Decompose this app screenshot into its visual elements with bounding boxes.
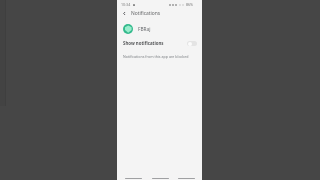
button[interactable]: FBRaj [117, 22, 202, 36]
button[interactable]: Back [122, 169, 144, 180]
staticText: Notifications [131, 10, 161, 17]
staticText: FBRaj [138, 26, 151, 33]
staticText: 10:34 [121, 2, 131, 7]
button[interactable]: Home [149, 169, 171, 180]
button[interactable]: Show notifications [117, 38, 202, 48]
button[interactable]: Back [117, 7, 131, 19]
staticText: Notifications from this app are blocked [123, 54, 189, 59]
button[interactable]: Recent apps [175, 169, 197, 180]
staticText: 86% [186, 2, 194, 7]
staticText: Show notifications [123, 40, 164, 46]
